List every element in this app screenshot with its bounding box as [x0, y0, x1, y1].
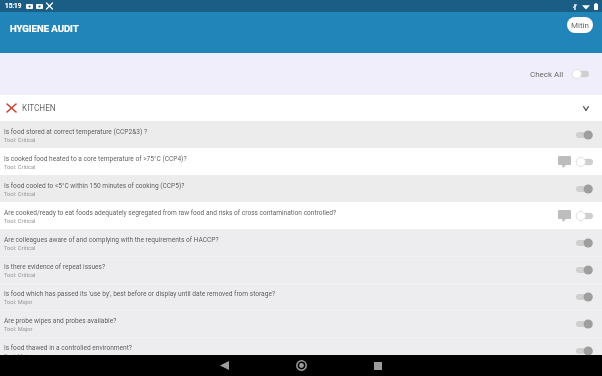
staticText: Are cooked/ready to eat foods adequately… — [4, 209, 337, 217]
button[interactable]: Is food thawed in a controlled environme… — [0, 337, 602, 364]
button[interactable]: Toggle answer — [576, 184, 593, 194]
button[interactable]: Collapse section — [577, 99, 595, 117]
button[interactable]: Add comment — [552, 208, 576, 224]
staticText: Tool: Critical — [4, 191, 36, 198]
staticText: Tool: Critical — [4, 164, 36, 171]
button[interactable]: Toggle answer — [576, 265, 593, 275]
button[interactable]: Is food stored at correct temperature (C… — [0, 121, 602, 148]
button[interactable]: Toggle answer — [576, 292, 593, 302]
staticText: Tool: Critical — [4, 137, 36, 144]
button[interactable]: Back — [207, 355, 241, 376]
button[interactable]: Is food cooled to <5°C within 150 minute… — [0, 175, 602, 202]
button[interactable]: Home — [284, 355, 318, 376]
staticText: Tool: Critical — [4, 272, 36, 279]
staticText: Is food stored at correct temperature (C… — [4, 128, 148, 136]
button[interactable]: Toggle answer — [576, 346, 593, 356]
staticText: KITCHEN — [22, 103, 56, 113]
button[interactable]: Are probe wipes and probes available? — [0, 310, 602, 337]
button[interactable]: Are cooked/ready to eat foods adequately… — [0, 202, 602, 229]
button[interactable]: Toggle answer — [576, 130, 593, 140]
button[interactable]: Are colleagues aware of and complying wi… — [0, 229, 602, 256]
staticText: Tool: Major — [4, 299, 33, 306]
staticText: Are probe wipes and probes available? — [4, 317, 117, 325]
button[interactable]: Is cooked food heated to a core temperat… — [0, 148, 602, 175]
staticText: Tool: Major — [4, 353, 33, 360]
staticText: Tool: Critical — [4, 218, 36, 225]
button[interactable]: Toggle answer — [576, 319, 593, 329]
staticText: Is food cooled to <5°C within 150 minute… — [4, 182, 185, 190]
staticText: Mitin — [571, 21, 589, 30]
button[interactable]: Is food which has passed its 'use by', b… — [0, 283, 602, 310]
staticText: Is cooked food heated to a core temperat… — [4, 155, 187, 163]
staticText: Tool: Major — [4, 326, 33, 333]
staticText: Is food which has passed its 'use by', b… — [4, 290, 276, 298]
button[interactable]: Mitin — [567, 17, 593, 33]
button[interactable]: Add comment — [552, 154, 576, 170]
button[interactable]: Toggle answer — [576, 238, 593, 248]
staticText: 15:19 — [5, 2, 22, 10]
button[interactable]: KITCHEN — [0, 95, 602, 121]
button[interactable]: Toggle answer — [576, 211, 593, 221]
staticText: Check All — [530, 70, 564, 79]
staticText: Is food thawed in a controlled environme… — [4, 344, 132, 352]
staticText: Is there evidence of repeat issues? — [4, 263, 106, 271]
button[interactable]: Recent apps — [361, 355, 395, 376]
button[interactable]: Toggle answer — [576, 157, 593, 167]
button[interactable]: Is there evidence of repeat issues? — [0, 256, 602, 283]
staticText: Tool: Critical — [4, 245, 36, 252]
staticText: Are colleagues aware of and complying wi… — [4, 236, 219, 244]
staticText: HYGIENE AUDIT — [10, 23, 79, 34]
button[interactable]: Check All — [530, 69, 589, 79]
